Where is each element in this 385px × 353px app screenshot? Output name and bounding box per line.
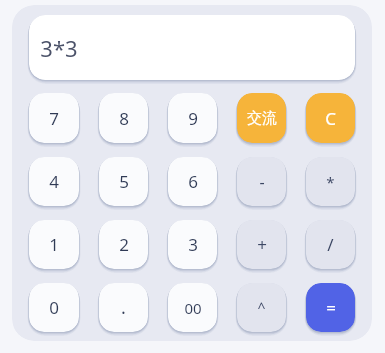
staticText: 6 bbox=[188, 170, 198, 193]
staticText: 00 bbox=[184, 298, 202, 318]
button[interactable]: 4 bbox=[29, 157, 79, 206]
button[interactable]: 9 bbox=[168, 93, 217, 143]
button[interactable]: 00 bbox=[168, 283, 217, 332]
staticText: 4 bbox=[49, 170, 59, 193]
button[interactable]: 1 bbox=[29, 220, 79, 269]
button[interactable]: Divide bbox=[306, 220, 355, 269]
staticText: / bbox=[327, 233, 334, 256]
button[interactable]: 交流 bbox=[237, 93, 286, 143]
button[interactable]: Minus bbox=[237, 157, 286, 206]
button[interactable]: Equals bbox=[306, 283, 355, 332]
staticText: = bbox=[326, 296, 336, 319]
button[interactable]: 5 bbox=[99, 157, 148, 206]
button[interactable]: 6 bbox=[168, 157, 217, 206]
staticText: 8 bbox=[119, 107, 129, 130]
staticText: 2 bbox=[119, 233, 129, 256]
staticText: . bbox=[121, 295, 126, 320]
button[interactable]: 3 bbox=[168, 220, 217, 269]
button[interactable]: Decimal point bbox=[99, 283, 148, 332]
staticText: 1 bbox=[49, 233, 59, 256]
staticText: 5 bbox=[119, 170, 129, 193]
staticText: 7 bbox=[49, 107, 59, 130]
staticText: 3 bbox=[188, 233, 198, 256]
button[interactable]: C bbox=[306, 93, 355, 143]
staticText: 9 bbox=[188, 107, 198, 130]
staticText: ^ bbox=[257, 298, 266, 317]
staticText: 交流 bbox=[247, 109, 277, 128]
button[interactable]: Multiply bbox=[306, 157, 355, 206]
staticText: + bbox=[257, 233, 267, 256]
staticText: C bbox=[325, 107, 336, 130]
button[interactable]: 2 bbox=[99, 220, 148, 269]
staticText: * bbox=[326, 172, 335, 192]
button[interactable]: 7 bbox=[29, 93, 79, 143]
button[interactable]: 3*3 bbox=[29, 15, 355, 80]
button[interactable]: 8 bbox=[99, 93, 148, 143]
staticText: 0 bbox=[49, 296, 59, 319]
staticText: - bbox=[259, 171, 265, 193]
button[interactable]: Power bbox=[237, 283, 286, 332]
staticText: 3*3 bbox=[40, 33, 78, 63]
button[interactable]: 0 bbox=[29, 283, 79, 332]
button[interactable]: Plus bbox=[237, 220, 286, 269]
